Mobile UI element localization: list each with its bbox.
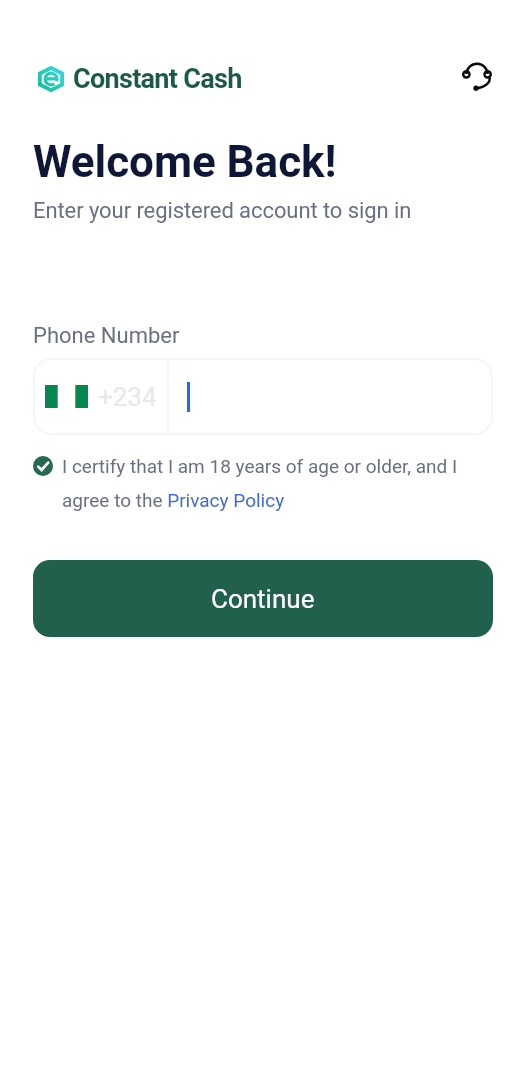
button[interactable]: Continue — [33, 560, 493, 637]
staticText: Welcome Back! — [33, 136, 337, 188]
button[interactable]: Constant Cash — [38, 63, 242, 95]
button[interactable]: +234 — [33, 358, 493, 435]
button[interactable]: I certify I am 18 or older — [33, 456, 53, 476]
staticText: Enter your registered account to sign in — [33, 198, 412, 224]
staticText: Continue — [211, 584, 315, 614]
staticText: Phone Number — [33, 323, 180, 349]
staticText: +234 — [98, 382, 157, 412]
staticText: Constant Cash — [73, 63, 242, 95]
button[interactable]: I certify I am 18 or older — [33, 455, 493, 511]
staticText: I certify that I am 18 years of age or o… — [62, 455, 493, 511]
button[interactable]: Customer support — [461, 57, 493, 89]
